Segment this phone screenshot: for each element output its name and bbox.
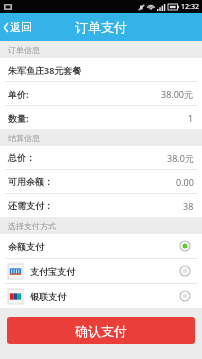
button[interactable]: 朱军鱼庄38元套餐 [0,58,202,81]
staticText: 12:32 [181,2,199,12]
staticText: 总价： [8,152,35,163]
button[interactable]: 银联支付 [0,284,202,308]
staticText: 支付宝支付 [30,266,75,277]
staticText: 可用余额： [8,176,53,187]
staticText: 结算信息 [8,133,40,143]
button[interactable]: 单价: [0,82,202,105]
staticText: 数量: [8,112,29,124]
button[interactable]: 支付宝支付 [0,259,202,283]
button[interactable]: 余额支付 [0,234,202,258]
button[interactable]: 总价： [0,146,202,169]
staticText: 单价: [8,88,29,100]
staticText: 38.00元 [161,88,194,100]
staticText: 银联支付 [30,291,66,302]
staticText: 选择支付方式 [8,221,56,231]
staticText: 还需支付： [8,200,53,211]
button[interactable]: 可用余额： [0,170,202,193]
button[interactable]: 数量: [0,106,202,129]
staticText: 订单支付 [75,19,127,35]
staticText: 0.00 [176,176,194,188]
staticText: 返回 [10,20,32,34]
staticText: 订单信息 [8,45,40,55]
staticText: 确认支付 [75,323,127,339]
staticText: 余额支付 [8,241,44,252]
staticText: 38.0元 [167,152,194,164]
button[interactable]: 确认支付 [7,317,195,344]
button[interactable]: 还需支付： [0,194,202,217]
staticText: 1 [188,112,194,124]
staticText: 朱军鱼庄38元套餐 [8,64,82,76]
button[interactable]: 返回 [0,13,40,41]
staticText: 38 [183,200,194,212]
